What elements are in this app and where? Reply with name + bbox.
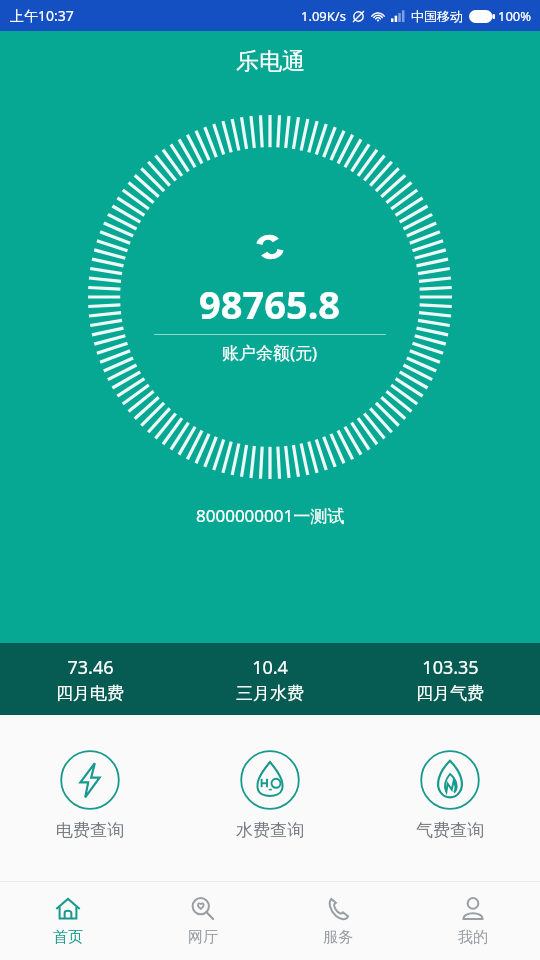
staticText: 四月气费: [416, 683, 484, 704]
staticText: 乐电通: [236, 47, 305, 76]
button[interactable]: Refresh balance: [253, 230, 287, 264]
staticText: 三月水费: [236, 683, 304, 704]
staticText: 10.4: [252, 655, 288, 680]
staticText: 103.35: [422, 655, 479, 680]
staticText: 首页: [53, 928, 83, 947]
staticText: 100%: [498, 7, 532, 25]
staticText: 73.46: [67, 655, 114, 680]
staticText: 网厅: [188, 928, 218, 947]
button[interactable]: 103.35: [360, 643, 540, 715]
staticText: 中国移动: [411, 8, 463, 24]
staticText: 98765.8: [199, 278, 341, 330]
button[interactable]: 首页: [0, 882, 135, 960]
button[interactable]: 服务: [270, 882, 405, 960]
staticText: 1.09K/s: [301, 7, 346, 25]
button[interactable]: 水费查询: [180, 715, 360, 875]
staticText: 上午10:37: [10, 6, 74, 25]
button[interactable]: 73.46: [0, 643, 180, 715]
button[interactable]: 电费查询: [0, 715, 180, 875]
button[interactable]: 气费查询: [360, 715, 540, 875]
staticText: 我的: [458, 928, 488, 947]
staticText: 电费查询: [56, 820, 124, 841]
button[interactable]: 10.4: [180, 643, 360, 715]
staticText: 水费查询: [236, 820, 304, 841]
staticText: 四月电费: [56, 683, 124, 704]
staticText: 账户余额(元): [222, 341, 318, 364]
staticText: 8000000001一测试: [196, 504, 345, 527]
staticText: 气费查询: [416, 820, 484, 841]
button[interactable]: 我的: [405, 882, 540, 960]
button[interactable]: 网厅: [135, 882, 270, 960]
staticText: 服务: [323, 928, 353, 947]
